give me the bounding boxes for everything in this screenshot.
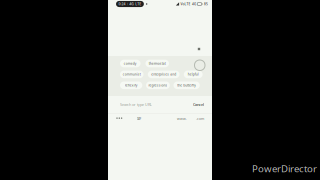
staticText: www.	[177, 116, 187, 121]
button[interactable]: thermostat	[145, 60, 169, 67]
staticText: VoLTE	[180, 2, 190, 6]
button[interactable]: comedy	[120, 60, 140, 67]
button[interactable]: Cancel	[193, 96, 204, 113]
staticText: thermostat	[149, 61, 166, 66]
button[interactable]: communist	[120, 71, 143, 78]
button[interactable]: reflexify	[120, 81, 142, 89]
staticText: 4G	[192, 2, 196, 6]
button[interactable]: www.	[177, 116, 187, 121]
staticText: 85	[204, 2, 208, 6]
button[interactable]: Search or type URL	[120, 96, 193, 113]
button[interactable]: helpful	[184, 71, 203, 78]
staticText: helpful	[188, 72, 199, 77]
button[interactable]: regressions	[146, 81, 170, 89]
button[interactable]: Page info	[197, 47, 201, 51]
button[interactable]: the butterfly	[173, 81, 200, 89]
button[interactable]: .com	[196, 116, 204, 121]
staticText: GIF	[136, 116, 141, 121]
button[interactable]: enterprises and	[148, 71, 179, 78]
staticText: PowerDirector	[252, 162, 317, 175]
staticText: the butterfly	[177, 83, 196, 87]
staticText: Cancel	[193, 102, 204, 107]
staticText: comedy	[124, 61, 137, 66]
staticText: 4G LTE	[129, 2, 141, 6]
staticText: 0:24	[119, 2, 126, 6]
staticText: reflexify	[125, 83, 138, 87]
button[interactable]: More options	[116, 117, 122, 121]
staticText: regressions	[148, 83, 167, 87]
button[interactable]: Voice input	[194, 60, 205, 70]
button[interactable]: GIF	[136, 116, 141, 121]
staticText: Search or type URL	[120, 102, 152, 107]
staticText: enterprises and	[151, 72, 176, 77]
staticText: .com	[196, 116, 204, 121]
staticText: communist	[123, 72, 141, 77]
